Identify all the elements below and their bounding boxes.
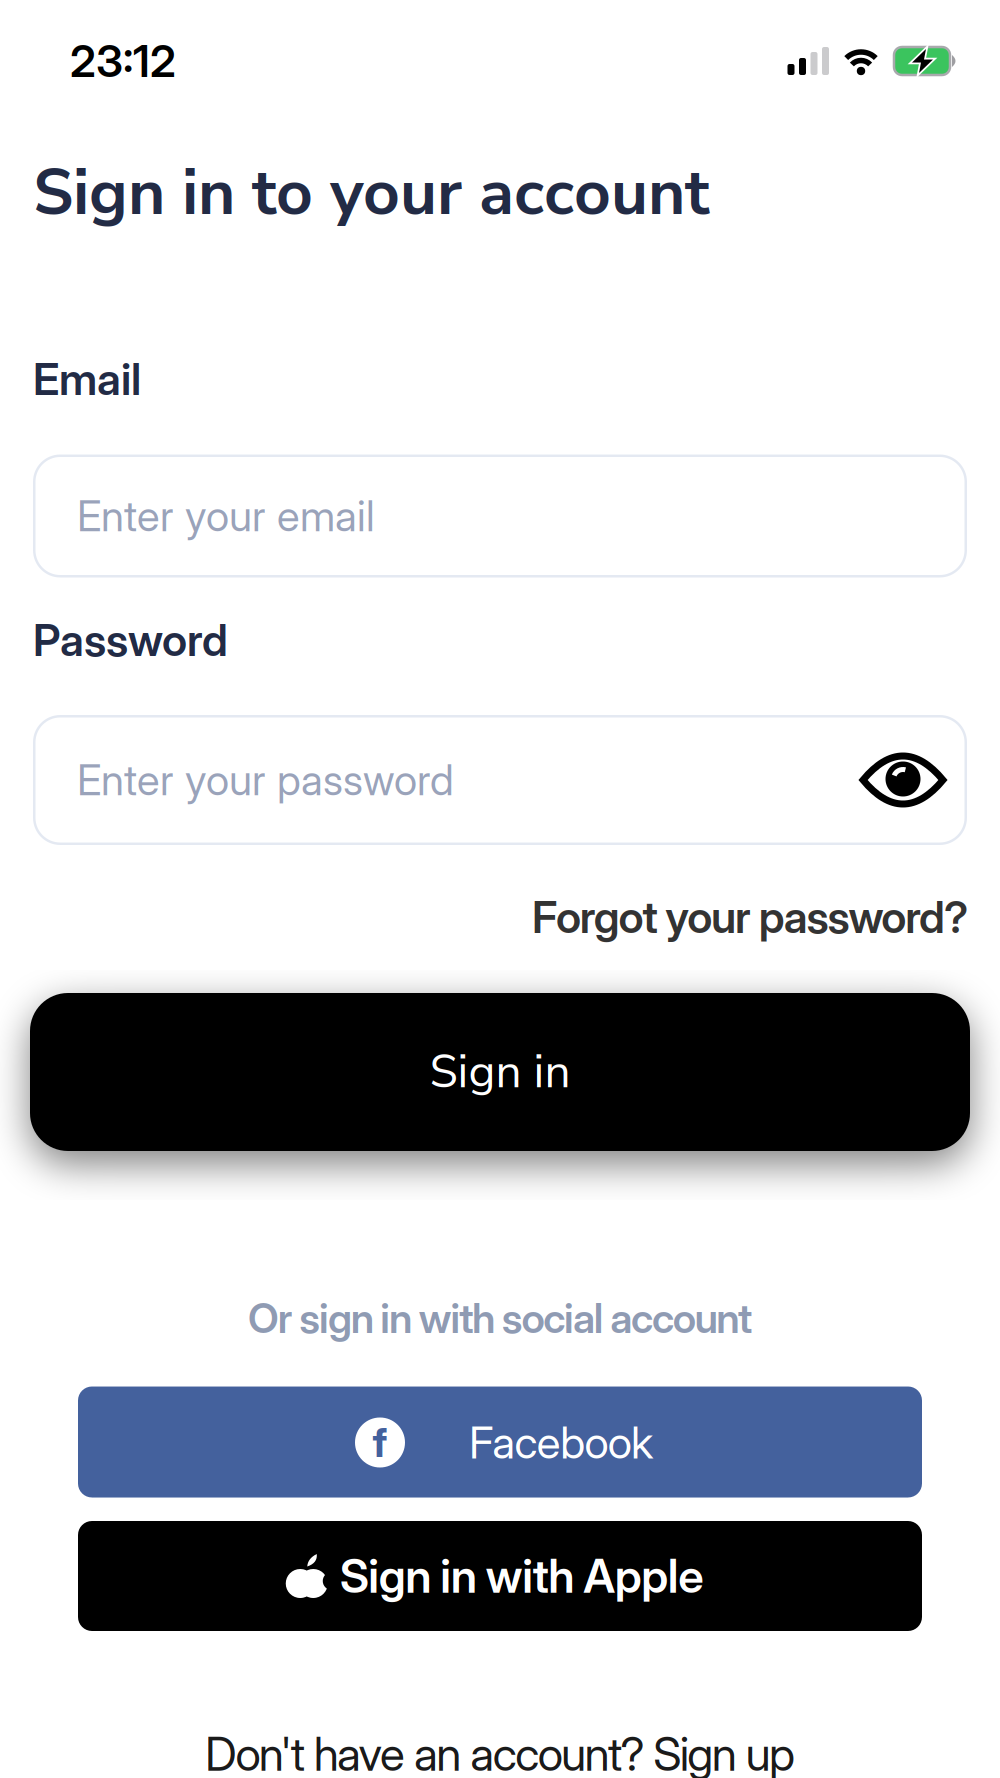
staticText: Enter your password: [77, 755, 454, 805]
staticText: Email: [33, 352, 141, 406]
staticText: Sign in: [429, 1041, 570, 1103]
staticText: 23:12: [70, 34, 176, 88]
button[interactable]: Forgot your password?: [532, 890, 968, 944]
button[interactable]: Show password: [861, 753, 967, 807]
button[interactable]: Sign in with Apple: [78, 1521, 922, 1631]
staticText: Enter your email: [77, 491, 375, 541]
staticText: Don't have an account? Sign up: [205, 1726, 795, 1778]
staticText: f: [372, 1418, 387, 1467]
staticText: Password: [33, 613, 228, 667]
staticText: Sign in to your account: [33, 149, 710, 237]
button[interactable]: Don't have an account? Sign up: [205, 1726, 795, 1778]
staticText: Sign in with Apple: [340, 1548, 703, 1604]
staticText: Or sign in with social account: [248, 1293, 752, 1343]
staticText: Facebook: [469, 1416, 653, 1469]
button[interactable]: f: [78, 1386, 922, 1497]
staticText: Forgot your password?: [532, 890, 968, 944]
button[interactable]: Sign in: [30, 993, 970, 1151]
